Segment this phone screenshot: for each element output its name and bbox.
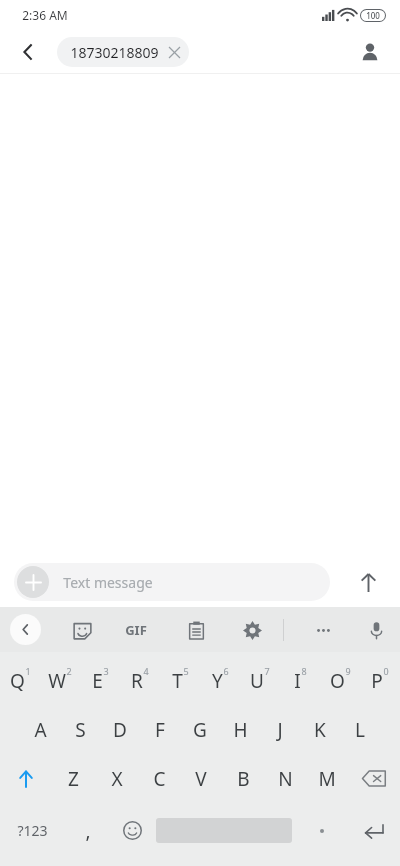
- button[interactable]: C: [138, 754, 180, 803]
- button[interactable]: Period: [296, 803, 348, 858]
- button[interactable]: G: [180, 705, 220, 754]
- button[interactable]: H: [220, 705, 260, 754]
- staticText: 0: [383, 665, 389, 677]
- staticText: K: [314, 717, 326, 743]
- staticText: V: [195, 766, 207, 792]
- button[interactable]: More options: [305, 612, 341, 648]
- staticText: H: [233, 717, 248, 743]
- button[interactable]: E: [80, 656, 120, 705]
- staticText: 100: [366, 10, 380, 21]
- staticText: 18730218809: [70, 43, 159, 62]
- button[interactable]: Delete: [348, 754, 400, 803]
- button[interactable]: ?123: [0, 803, 64, 858]
- staticText: 6: [223, 665, 229, 677]
- button[interactable]: Text message: [14, 563, 330, 601]
- button[interactable]: K: [300, 705, 340, 754]
- button[interactable]: Close toolbar: [10, 614, 41, 645]
- staticText: 1: [25, 665, 31, 677]
- button[interactable]: Clipboard: [178, 612, 214, 648]
- staticText: M: [318, 766, 336, 792]
- button[interactable]: GIF: [118, 612, 154, 648]
- staticText: 8: [301, 665, 307, 677]
- staticText: 2:36 AM: [22, 7, 68, 23]
- staticText: N: [278, 766, 293, 792]
- button[interactable]: Send: [348, 562, 388, 602]
- button[interactable]: N: [264, 754, 306, 803]
- staticText: L: [355, 717, 365, 743]
- button[interactable]: M: [306, 754, 348, 803]
- staticText: 5: [183, 665, 189, 677]
- button[interactable]: R: [120, 656, 160, 705]
- staticText: F: [155, 717, 165, 743]
- button[interactable]: Q: [0, 656, 40, 705]
- button[interactable]: Enter: [348, 803, 400, 858]
- button[interactable]: A: [20, 705, 60, 754]
- staticText: I: [294, 668, 301, 694]
- button[interactable]: V: [180, 754, 222, 803]
- staticText: D: [113, 717, 127, 743]
- button[interactable]: X: [95, 754, 138, 803]
- button[interactable]: U: [240, 656, 280, 705]
- staticText: P: [371, 668, 383, 694]
- button[interactable]: 18730218809: [57, 37, 189, 67]
- staticText: ?123: [17, 821, 48, 840]
- button[interactable]: J: [260, 705, 300, 754]
- button[interactable]: Shift: [0, 754, 52, 803]
- staticText: 3: [103, 665, 109, 677]
- staticText: 4: [143, 665, 149, 677]
- button[interactable]: Emoji: [112, 803, 152, 858]
- staticText: J: [277, 717, 283, 743]
- staticText: S: [75, 717, 86, 743]
- button[interactable]: Comma: [64, 803, 112, 858]
- staticText: 2: [66, 665, 72, 677]
- staticText: W: [48, 668, 66, 694]
- staticText: Z: [68, 766, 79, 792]
- staticText: X: [111, 766, 123, 792]
- staticText: Y: [212, 668, 223, 694]
- button[interactable]: I: [280, 656, 320, 705]
- button[interactable]: F: [140, 705, 180, 754]
- button[interactable]: D: [100, 705, 140, 754]
- button[interactable]: S: [60, 705, 100, 754]
- button[interactable]: O: [320, 656, 360, 705]
- button[interactable]: L: [340, 705, 380, 754]
- staticText: R: [131, 668, 143, 694]
- button[interactable]: W: [40, 656, 80, 705]
- staticText: C: [153, 766, 166, 792]
- staticText: E: [92, 668, 103, 694]
- button[interactable]: Y: [200, 656, 240, 705]
- staticText: GIF: [125, 621, 147, 639]
- button[interactable]: T: [160, 656, 200, 705]
- staticText: G: [193, 717, 207, 743]
- staticText: T: [172, 668, 183, 694]
- button[interactable]: Back: [8, 32, 48, 72]
- button[interactable]: Settings: [234, 612, 270, 648]
- staticText: ,: [85, 818, 91, 844]
- button[interactable]: Voice input: [358, 612, 394, 648]
- staticText: 9: [345, 665, 351, 677]
- button[interactable]: P: [360, 656, 400, 705]
- button[interactable]: B: [222, 754, 264, 803]
- staticText: B: [237, 766, 250, 792]
- staticText: Text message: [63, 573, 153, 592]
- staticText: Q: [10, 668, 25, 694]
- button[interactable]: Z: [52, 754, 95, 803]
- button[interactable]: Contact details: [350, 32, 390, 72]
- staticText: A: [34, 717, 47, 743]
- staticText: O: [330, 668, 345, 694]
- staticText: 7: [264, 665, 270, 677]
- staticText: U: [250, 668, 264, 694]
- button[interactable]: Stickers: [64, 612, 100, 648]
